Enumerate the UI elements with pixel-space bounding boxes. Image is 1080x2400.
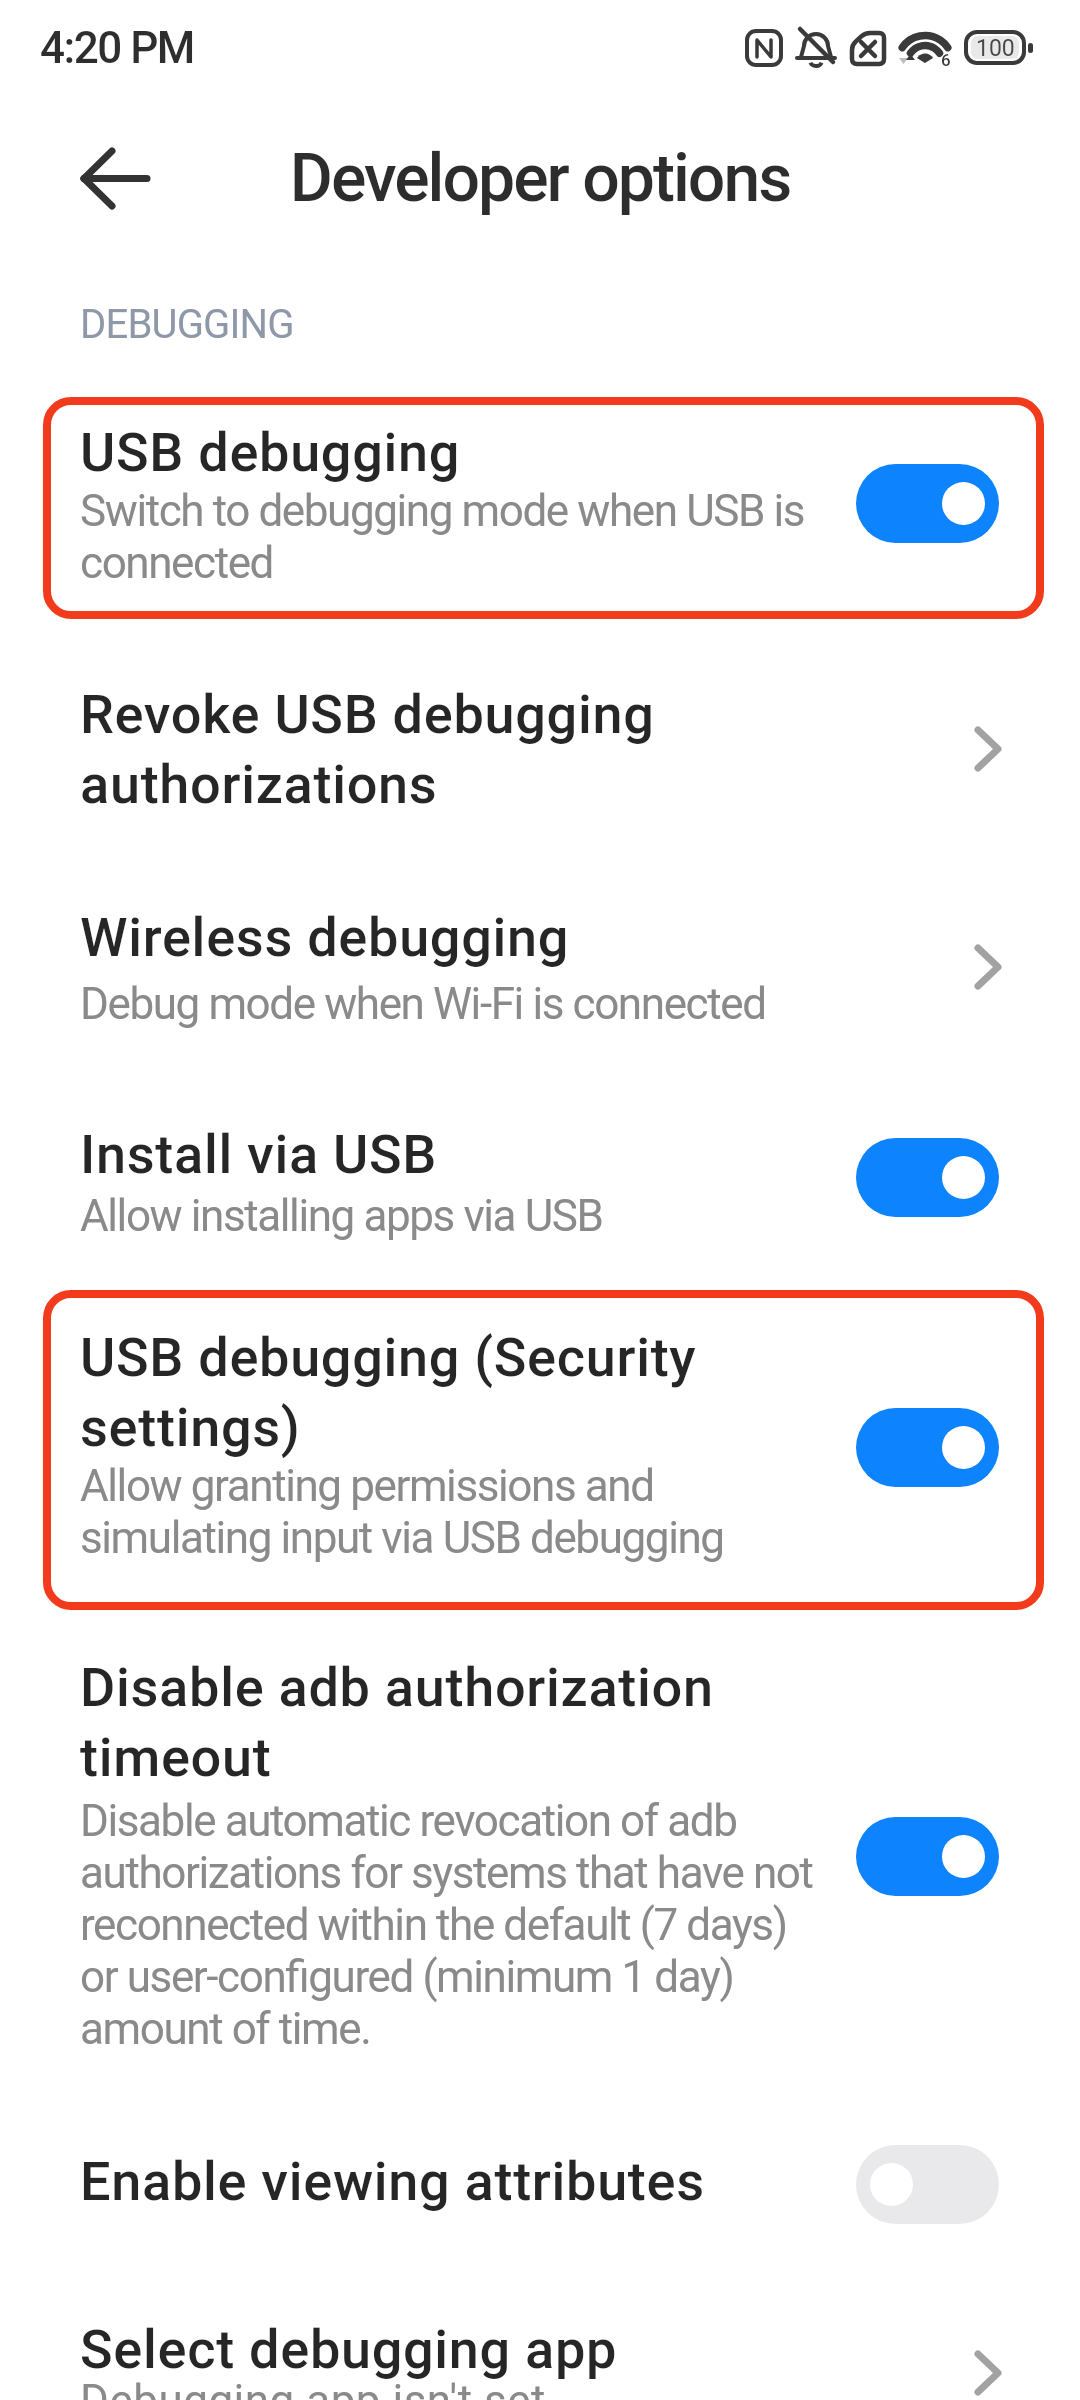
staticText: 4:20 PM — [40, 22, 194, 74]
staticText: 100 — [976, 35, 1015, 62]
button[interactable] — [856, 1138, 999, 1217]
button[interactable]: Select debugging app — [0, 2290, 1080, 2400]
staticText: Allow granting permissions and — [80, 1460, 654, 1512]
staticText: connected — [80, 537, 274, 589]
staticText: Allow installing apps via USB — [80, 1190, 603, 1242]
staticText: Debug mode when Wi-Fi is connected — [80, 978, 766, 1030]
staticText: USB debugging — [80, 421, 461, 484]
button[interactable]: Wireless debugging — [0, 890, 1080, 1040]
staticText: or user-configured (minimum 1 day) — [80, 1951, 734, 2003]
staticText: timeout — [80, 1726, 272, 1789]
button[interactable] — [856, 2145, 999, 2224]
button[interactable]: Disable adb authorization — [0, 1630, 1080, 2060]
staticText: Developer options — [0, 140, 1080, 217]
staticText: Wireless debugging — [80, 906, 570, 969]
button[interactable]: Install via USB — [0, 1110, 1080, 1250]
staticText: Select debugging app — [80, 2318, 618, 2381]
staticText: amount of time. — [80, 2003, 371, 2055]
staticText: Debugging app isn't set — [80, 2375, 546, 2400]
staticText: Revoke USB debugging — [80, 683, 655, 746]
button[interactable]: USB debugging (Security — [0, 1290, 1080, 1610]
staticText: USB debugging (Security — [80, 1326, 697, 1389]
staticText: 6 — [941, 50, 951, 70]
staticText: settings) — [80, 1396, 301, 1459]
button[interactable]: USB debugging — [0, 397, 1080, 619]
staticText: authorizations — [80, 753, 438, 816]
staticText: Enable viewing attributes — [80, 2150, 705, 2213]
staticText: reconnected within the default (7 days) — [80, 1899, 787, 1951]
staticText: Switch to debugging mode when USB is — [80, 485, 805, 537]
staticText: Disable automatic revocation of adb — [80, 1795, 737, 1847]
button[interactable] — [856, 1408, 999, 1487]
staticText: DEBUGGING — [80, 301, 294, 348]
button[interactable]: Enable viewing attributes — [0, 2120, 1080, 2250]
button[interactable] — [856, 1817, 999, 1896]
staticText: Disable adb authorization — [80, 1656, 714, 1719]
button[interactable] — [856, 464, 999, 543]
button[interactable] — [70, 138, 152, 220]
staticText: Install via USB — [80, 1123, 438, 1186]
staticText: simulating input via USB debugging — [80, 1512, 724, 1564]
button[interactable]: Revoke USB debugging — [0, 660, 1080, 835]
staticText: authorizations for systems that have not — [80, 1847, 813, 1899]
